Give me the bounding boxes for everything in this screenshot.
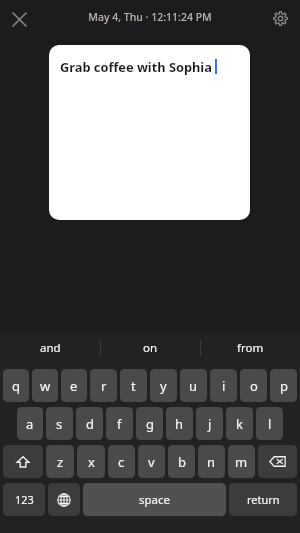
staticText: Grab coffee with Sophia	[60, 58, 212, 75]
button[interactable]: z	[46, 445, 74, 478]
staticText: j	[208, 415, 212, 433]
staticText: on	[143, 340, 158, 356]
button[interactable]: and	[0, 333, 100, 363]
button[interactable]: t	[120, 369, 147, 402]
staticText: k	[236, 415, 243, 433]
button[interactable]: return	[229, 483, 297, 516]
button[interactable]: Grab coffee with Sophia	[49, 45, 250, 220]
button[interactable]: v	[138, 445, 165, 478]
button[interactable]: x	[77, 445, 105, 478]
staticText: z	[57, 453, 64, 471]
staticText: from	[237, 340, 264, 356]
staticText: t	[131, 377, 136, 395]
staticText: return	[247, 492, 280, 507]
button[interactable]: u	[180, 369, 207, 402]
staticText: y	[160, 377, 167, 395]
staticText: r	[101, 377, 107, 395]
button[interactable]: q	[3, 369, 29, 402]
button[interactable]: space	[83, 483, 226, 516]
staticText: q	[12, 377, 20, 395]
button[interactable]: Shift	[3, 445, 43, 478]
button[interactable]: h	[166, 407, 193, 440]
staticText: m	[235, 453, 248, 471]
button[interactable]: a	[17, 407, 43, 440]
button[interactable]: 123	[3, 483, 45, 516]
button[interactable]: i	[210, 369, 237, 402]
button[interactable]: r	[90, 369, 117, 402]
staticText: a	[26, 415, 34, 433]
staticText: v	[148, 453, 155, 471]
staticText: h	[175, 415, 184, 433]
staticText: i	[222, 377, 226, 395]
button[interactable]: g	[136, 407, 163, 440]
button[interactable]: from	[201, 333, 300, 363]
staticText: 123	[15, 492, 34, 507]
staticText: p	[280, 377, 288, 395]
button[interactable]: Close	[6, 6, 32, 32]
button[interactable]: e	[61, 369, 87, 402]
staticText: space	[139, 492, 171, 508]
staticText: e	[70, 377, 78, 395]
button[interactable]: d	[76, 407, 103, 440]
staticText: s	[56, 415, 63, 433]
staticText: c	[118, 453, 125, 471]
button[interactable]: Backspace	[258, 445, 297, 478]
button[interactable]: y	[150, 369, 177, 402]
staticText: u	[189, 377, 198, 395]
staticText: o	[250, 377, 258, 395]
staticText: x	[88, 453, 95, 471]
staticText: l	[268, 415, 272, 433]
button[interactable]: o	[240, 369, 267, 402]
button[interactable]: w	[32, 369, 58, 402]
staticText: b	[178, 453, 186, 471]
button[interactable]: b	[168, 445, 195, 478]
staticText: d	[86, 415, 94, 433]
staticText: w	[40, 377, 51, 395]
button[interactable]: Settings	[267, 5, 293, 31]
staticText: and	[40, 340, 61, 356]
staticText: f	[117, 415, 122, 433]
button[interactable]: n	[198, 445, 225, 478]
button[interactable]: Change keyboard language	[48, 483, 80, 516]
staticText: n	[207, 453, 216, 471]
button[interactable]: j	[196, 407, 223, 440]
button[interactable]: f	[106, 407, 133, 440]
button[interactable]: m	[228, 445, 255, 478]
staticText: g	[146, 415, 154, 433]
button[interactable]: on	[101, 333, 200, 363]
button[interactable]: p	[270, 369, 297, 402]
staticText: May 4, Thu · 12:11:24 PM	[88, 10, 212, 24]
button[interactable]: l	[256, 407, 283, 440]
button[interactable]: c	[108, 445, 135, 478]
button[interactable]: s	[46, 407, 73, 440]
button[interactable]: k	[226, 407, 253, 440]
